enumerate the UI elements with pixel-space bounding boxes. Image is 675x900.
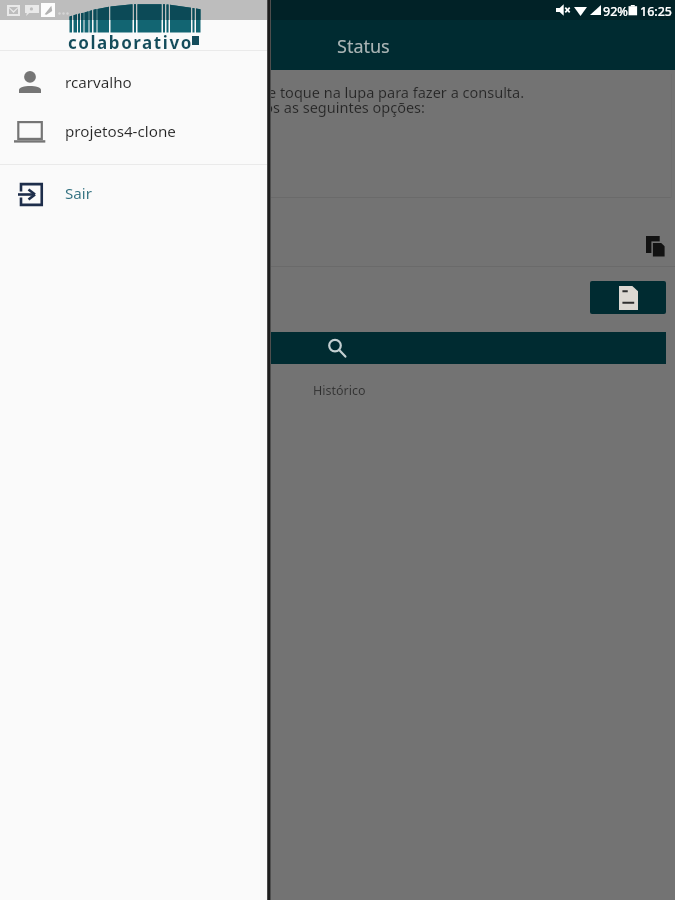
staticText: Histórico [313,382,366,399]
staticText: Para cada registro temos as seguintes op… [110,97,425,117]
staticText: Selecione o filtro e toque na lupa para … [151,82,525,102]
button[interactable]: rcarvalho [0,51,267,103]
staticText: Sair [65,183,93,204]
button[interactable]: Pesquisar [9,332,666,364]
staticText: rcarvalho [65,72,132,93]
staticText: 92% [603,3,628,20]
staticText: 16:25 [640,3,673,20]
staticText: projetos4-clone [65,121,176,142]
button[interactable]: projetos4-clone [0,105,267,157]
button[interactable]: Copiar [0,201,675,266]
staticText: Status [337,34,390,59]
button[interactable]: Relatorio [590,281,666,314]
staticText: colaborativo [68,31,193,54]
button[interactable]: Sair [0,169,267,221]
